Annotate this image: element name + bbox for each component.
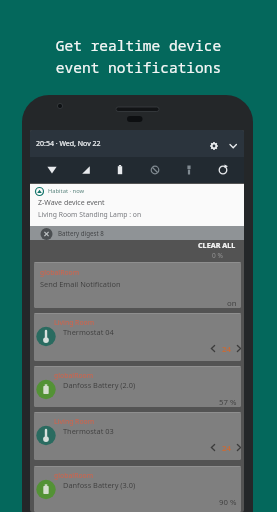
staticText: Danfoss Battery (2.0) [63,380,136,390]
staticText: 24 [222,443,231,454]
button[interactable]: globalRoom [34,262,241,308]
staticText: Get realtime device [0,35,277,55]
staticText: Danfoss Battery (3.0) [63,480,136,490]
button[interactable]: CLEAR ALL [176,238,236,252]
staticText: Thermostat 03 [63,426,114,436]
button[interactable]: Living Room [34,412,241,460]
staticText: globalRoom [40,268,80,277]
button[interactable]: Living Room [34,313,241,361]
staticText: Living Room [54,318,95,327]
staticText: Battery digest 8 [58,229,104,237]
button[interactable]: globalRoom [34,466,241,512]
button[interactable]: globalRoom [34,366,241,407]
button[interactable] [30,184,244,226]
staticText: 20:54 · Wed, Nov 22 [36,139,101,149]
staticText: Z-Wave device event [38,198,105,208]
staticText: globalRoom [54,471,94,480]
staticText: CLEAR ALL [198,240,236,250]
staticText: 0 % [212,251,223,260]
staticText: Living Room [54,417,95,426]
staticText: on [227,298,237,308]
staticText: 57 % [219,397,237,407]
staticText: Habitat · now [48,187,85,195]
staticText: 90 % [219,497,237,508]
staticText: Send Email Notification [40,279,121,289]
staticText: 24 [222,344,231,355]
staticText: globalRoom [54,371,94,380]
staticText: Thermostat 04 [63,327,114,337]
staticText: event notifications [0,57,277,77]
staticText: Living Room Standing Lamp : on [38,210,142,219]
